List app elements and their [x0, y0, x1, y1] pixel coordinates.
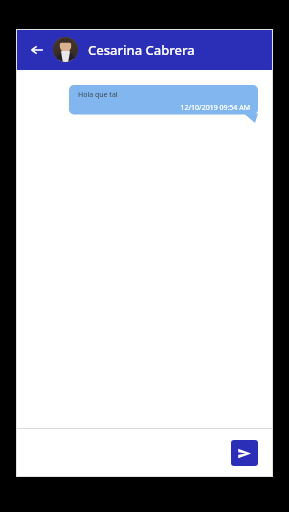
button[interactable]: Hola que tal: [69, 85, 258, 123]
button[interactable]: Back: [25, 38, 49, 62]
staticText: Hola que tal: [78, 90, 118, 100]
staticText: Cesarina Cabrera: [88, 41, 195, 59]
staticText: 12/10/2019 09:54 AM: [78, 103, 250, 113]
button[interactable]: Send: [231, 440, 258, 466]
button[interactable]: Contact photo: [53, 37, 78, 62]
